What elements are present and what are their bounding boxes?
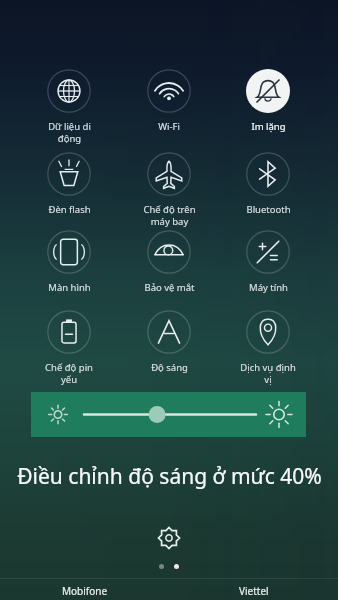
staticText: Đèn flash [48,203,91,216]
staticText: Wi-Fi [158,120,180,133]
button[interactable]: Chế độ pin yếu [23,310,115,386]
staticText: Dữ liệu di động [48,120,91,145]
button[interactable]: Viettel [169,581,338,600]
button[interactable]: Máy tính [222,230,314,294]
staticText: Điều chỉnh độ sáng ở mức 40% [17,462,322,491]
button[interactable]: Màn hình [23,230,115,294]
staticText: Máy tính [249,281,288,294]
button[interactable]: Bảo vệ mắt [123,230,215,294]
button[interactable]: Im lặng [222,69,314,133]
button[interactable]: Độ sáng [123,310,215,374]
button[interactable]: Đèn flash [23,152,115,216]
button[interactable]: Chế độ trên máy bay [123,152,215,228]
staticText: Bảo vệ mắt [144,281,195,294]
button[interactable]: Dịch vụ định vị [222,310,314,386]
staticText: Im lặng [251,120,286,133]
staticText: Dịch vụ định vị [240,361,296,386]
button[interactable]: Settings [151,520,187,556]
button[interactable]: Brightness slider [31,392,306,437]
staticText: Chế độ trên máy bay [143,203,196,228]
button[interactable]: Bluetooth [222,152,314,216]
button[interactable]: Dữ liệu di động [23,69,115,145]
button[interactable]: Mobifone [0,581,169,600]
staticText: Mobifone [62,584,108,598]
button[interactable]: Wi-Fi [123,69,215,133]
staticText: Chế độ pin yếu [45,361,93,386]
staticText: Độ sáng [151,361,188,374]
staticText: Màn hình [48,281,91,294]
staticText: Bluetooth [246,203,291,216]
staticText: Viettel [239,584,269,598]
